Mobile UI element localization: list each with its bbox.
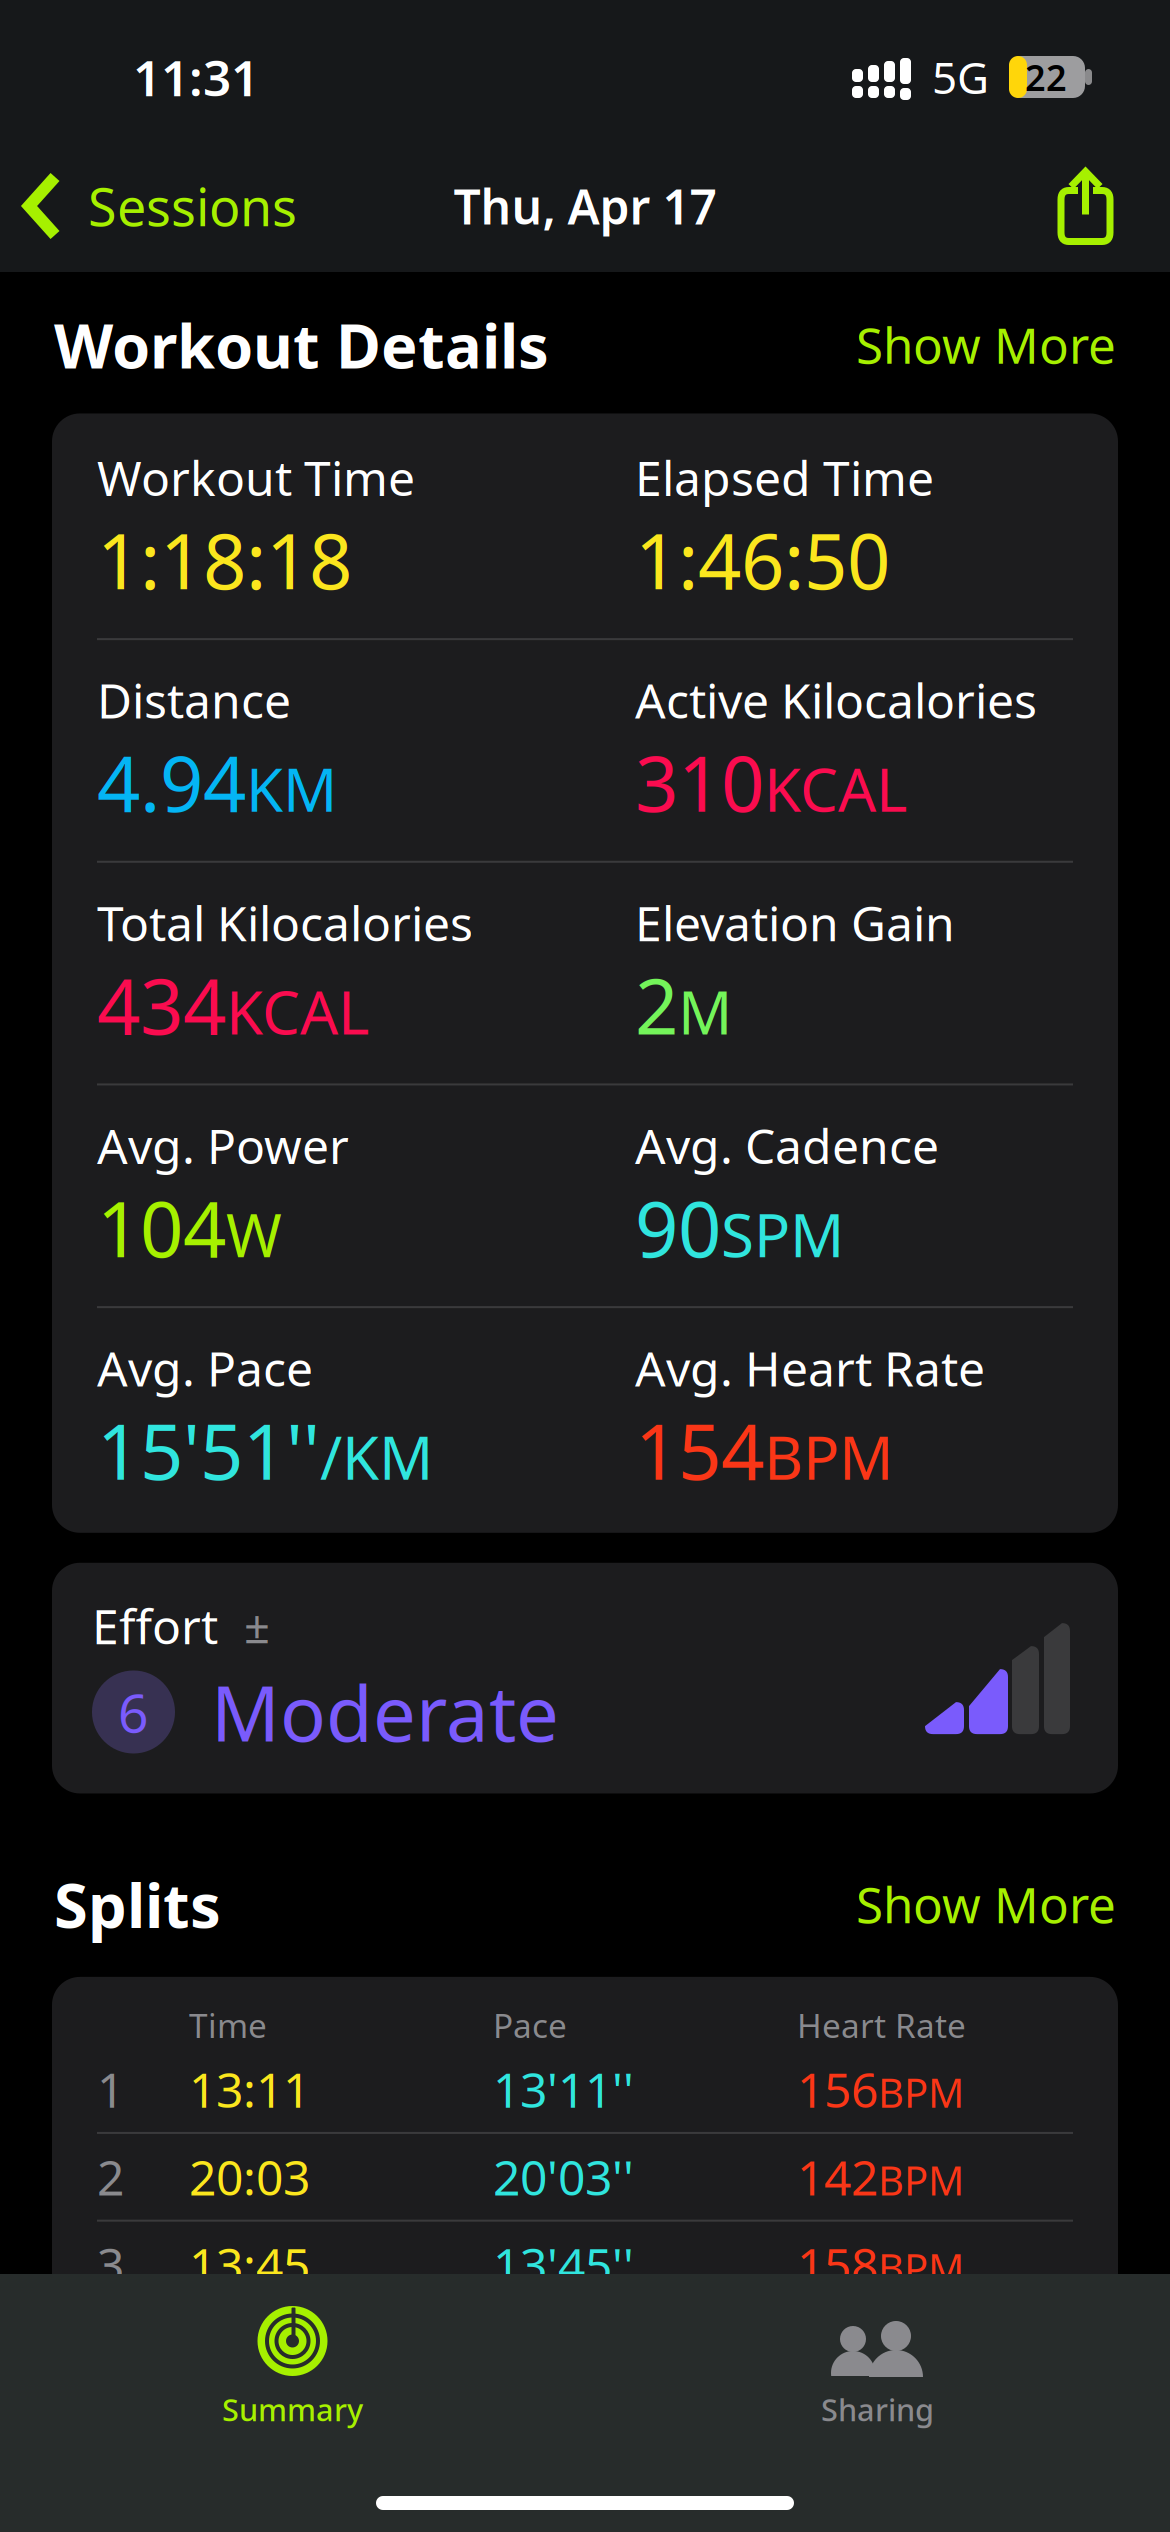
staticText: BPM <box>878 2241 964 2294</box>
staticText: Avg. Power <box>97 1113 349 1177</box>
staticText: Elevation Gain <box>635 891 955 954</box>
staticText: Sharing <box>821 2389 934 2430</box>
staticText: 1:46:50 <box>635 509 890 610</box>
staticText: 11:22 <box>189 2320 310 2384</box>
staticText: BPM <box>878 2153 964 2206</box>
staticText: 1 <box>97 2057 124 2121</box>
staticText: Avg. Heart Rate <box>635 1336 985 1400</box>
button[interactable]: Sessions <box>22 171 297 241</box>
staticText: 90 <box>635 1177 721 1278</box>
staticText: 20:03 <box>189 2145 310 2209</box>
staticText: Workout Time <box>97 445 415 509</box>
staticText: Moderate <box>211 1661 559 1762</box>
staticText: Pace <box>493 2003 567 2047</box>
staticText: Active Kilocalories <box>635 668 1037 732</box>
staticText: 15'51'' <box>97 1400 320 1501</box>
staticText: 2 <box>97 2145 124 2209</box>
staticText: 13:11 <box>189 2057 310 2121</box>
staticText: 5G <box>932 48 989 106</box>
staticText: BPM <box>878 2066 964 2119</box>
staticText: Time <box>189 2003 267 2047</box>
button[interactable]: Effort <box>52 1563 1118 1793</box>
staticText: Heart Rate <box>797 2003 966 2047</box>
staticText: 156 <box>797 2057 878 2121</box>
staticText: 6 <box>118 1677 149 1747</box>
staticText: W <box>226 1194 282 1274</box>
staticText: KCAL <box>764 749 907 828</box>
staticText: Distance <box>97 668 291 732</box>
staticText: 434 <box>97 954 226 1055</box>
staticText: Show More <box>856 312 1116 377</box>
staticText: Summary <box>222 2389 363 2430</box>
staticText: 4.94 <box>97 732 246 833</box>
staticText: Thu, Apr 17 <box>453 174 716 238</box>
button[interactable]: Summary <box>0 2305 585 2430</box>
staticText: 13'45'' <box>493 2233 634 2296</box>
button[interactable]: Show More <box>856 1871 1116 1937</box>
staticText: 13'11'' <box>493 2057 634 2121</box>
staticText: Workout Details <box>54 304 549 385</box>
staticText: Total Kilocalories <box>97 891 473 954</box>
staticText: KCAL <box>226 971 369 1051</box>
staticText: ± <box>244 1596 270 1656</box>
staticText: Splits <box>54 1863 221 1945</box>
staticText: /KM <box>320 1417 433 1496</box>
staticText: Effort <box>92 1594 218 1657</box>
staticText: SPM <box>721 1194 844 1274</box>
staticText: 22 <box>1025 53 1067 101</box>
staticText: 104 <box>97 1177 226 1278</box>
button[interactable]: Sharing <box>585 2305 1170 2430</box>
button[interactable]: Share <box>1057 166 1114 245</box>
staticText: 2 <box>635 954 678 1055</box>
staticText: 160 <box>797 2320 878 2384</box>
staticText: Avg. Pace <box>97 1336 313 1400</box>
staticText: Sessions <box>88 171 297 241</box>
staticText: 142 <box>797 2145 878 2209</box>
staticText: 158 <box>797 2233 878 2296</box>
staticText: 154 <box>635 1400 764 1501</box>
staticText: Show More <box>856 1871 1116 1937</box>
staticText: M <box>678 971 732 1051</box>
staticText: 3 <box>97 2233 124 2296</box>
button[interactable]: Show More <box>856 312 1116 377</box>
staticText: 1:18:18 <box>97 509 352 610</box>
staticText: BPM <box>764 1417 893 1496</box>
staticText: 13:45 <box>189 2233 310 2296</box>
staticText: 20'03'' <box>493 2145 634 2209</box>
staticText: 11:31 <box>133 44 259 110</box>
staticText: Elapsed Time <box>635 445 934 509</box>
staticText: BPM <box>878 2329 964 2382</box>
staticText: 310 <box>635 732 764 833</box>
staticText: KM <box>246 749 337 828</box>
staticText: Avg. Cadence <box>635 1113 939 1177</box>
